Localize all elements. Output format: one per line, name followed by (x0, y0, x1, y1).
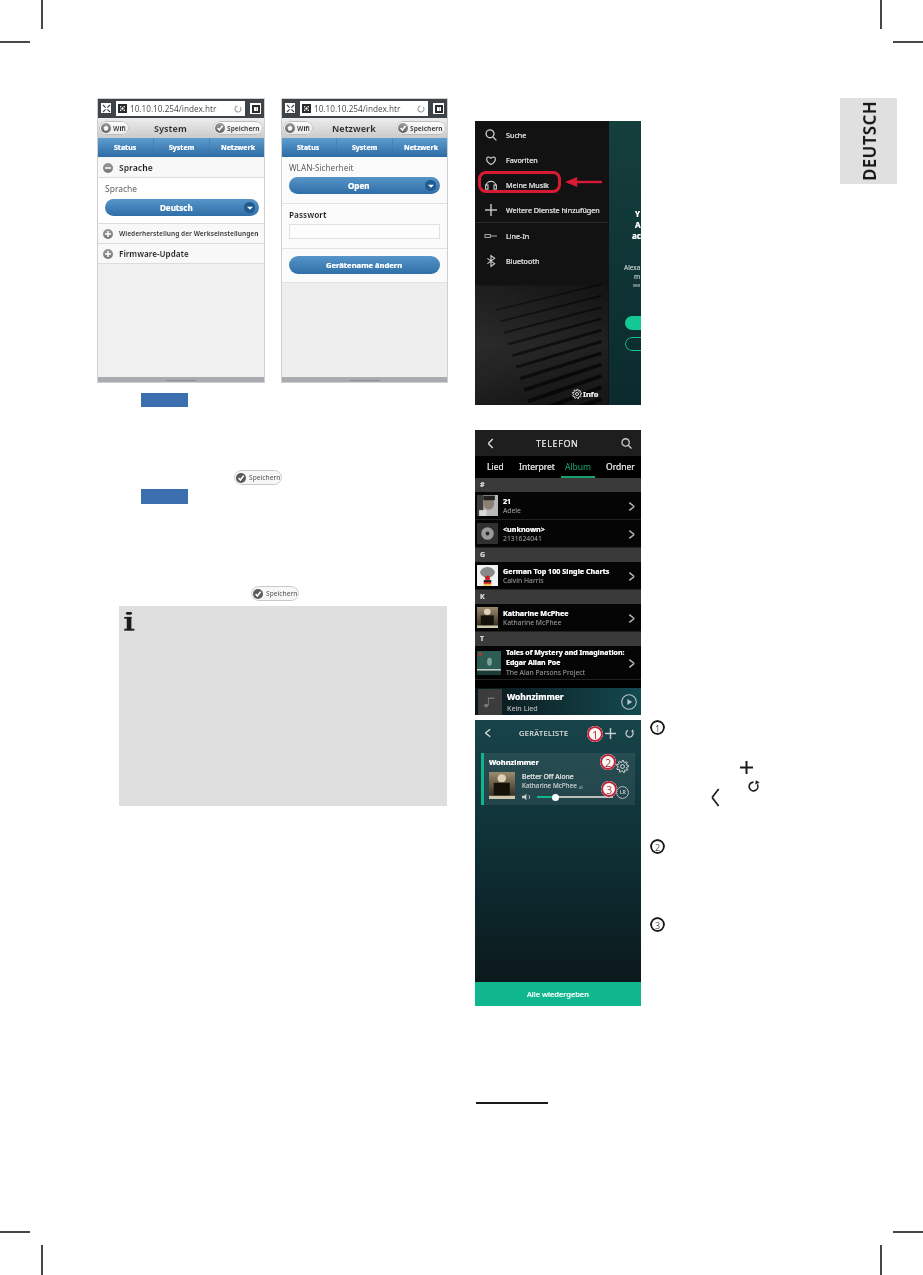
button[interactable]: Full screen (101, 103, 111, 113)
button[interactable]: Bluetooth (485, 248, 606, 273)
button[interactable]: Gerätename ändern (289, 256, 440, 274)
staticText: # (480, 480, 485, 490)
staticText: German Top 100 Single Charts (503, 566, 610, 576)
button[interactable]: Speichern (253, 586, 299, 601)
staticText: System (352, 143, 378, 153)
staticText: Alle wiedergeben (527, 989, 589, 999)
button[interactable]: Suche (485, 122, 606, 147)
staticText: Status (114, 143, 137, 153)
button[interactable]: System (154, 138, 209, 157)
button[interactable]: Speichern (215, 121, 261, 135)
staticText: Netzwerk (332, 122, 376, 134)
staticText: 3 (606, 782, 613, 797)
button[interactable]: Status (97, 138, 153, 157)
staticText: 1 (255, 106, 258, 112)
staticText: Deutsch (160, 202, 193, 213)
button[interactable]: 10.10.10.254/index.htr (118, 101, 243, 116)
staticText: Kein Lied (507, 703, 538, 713)
staticText: G (480, 550, 486, 560)
staticText: TELEFON (536, 437, 579, 449)
staticText: 2 (655, 841, 661, 853)
button[interactable]: Back (481, 726, 495, 740)
button[interactable]: Alle wiedergeben (475, 982, 641, 1006)
staticText: GERÄTELISTE (519, 728, 569, 738)
button[interactable]: Open (293, 177, 436, 194)
staticText: m (634, 272, 641, 281)
button[interactable]: Speichern (236, 470, 282, 485)
button[interactable]: Left Right channel (616, 786, 629, 799)
staticText: Sprache (119, 162, 153, 174)
staticText: Speichern (410, 124, 443, 133)
button[interactable]: Sprache (103, 159, 265, 177)
button[interactable]: Tales of Mystery and Imagination: (475, 646, 641, 679)
staticText: LR (620, 789, 626, 796)
button[interactable]: 10.10.10.254/index.htr (302, 101, 426, 116)
button[interactable]: Wifi (285, 121, 311, 135)
button[interactable]: Tabs (250, 103, 261, 114)
button[interactable]: Katharine McPhee (475, 604, 641, 631)
staticText: T (480, 634, 485, 644)
staticText: 2 (605, 755, 612, 770)
staticText: K (480, 592, 485, 602)
button[interactable]: System (337, 138, 392, 157)
staticText: A (635, 219, 641, 230)
staticText: Bluetooth (506, 256, 540, 266)
button[interactable]: Play (620, 693, 637, 710)
button[interactable]: Tabs (433, 103, 444, 114)
staticText: ac (632, 230, 641, 241)
button[interactable]: German Top 100 Single Charts (475, 562, 641, 589)
staticText: 1 (655, 722, 661, 734)
button[interactable]: Line-In (485, 223, 606, 248)
button[interactable]: Firmware-Update (103, 244, 265, 263)
button[interactable]: <unknown> (475, 520, 641, 547)
button[interactable]: Wifi (101, 121, 127, 135)
staticText: 1 (438, 106, 441, 112)
button[interactable]: Album (557, 456, 599, 478)
staticText: Firmware-Update (119, 248, 189, 259)
staticText: Katharine McPhee (503, 618, 562, 627)
staticText: 1 (592, 727, 599, 742)
button[interactable]: Full screen (285, 103, 295, 113)
staticText: Passwort (289, 209, 327, 220)
button[interactable]: Interpret (516, 456, 557, 478)
button[interactable]: Lied (475, 456, 516, 478)
button[interactable]: Meine Musik (485, 172, 606, 197)
button[interactable]: Ordner (599, 456, 641, 478)
staticText: Wiederherstellung der Werkseinstellungen (119, 229, 259, 238)
button[interactable]: Wiederherstellung der Werkseinstellungen (103, 224, 263, 243)
staticText: Wifi (113, 124, 126, 133)
button[interactable]: Info (572, 389, 599, 399)
staticText: Wohnzimmer (489, 757, 539, 767)
staticText: 21 (503, 496, 512, 506)
button[interactable]: Status (281, 138, 336, 157)
staticText: Status (297, 143, 320, 153)
staticText: Album (565, 461, 592, 473)
staticText: Info (583, 389, 599, 399)
staticText: Tales of Mystery and Imagination: (506, 648, 625, 658)
staticText: Better Off Alone (522, 772, 574, 781)
staticText: 10.10.10.254/index.htr (314, 103, 401, 114)
button[interactable]: Add device (604, 727, 617, 740)
button[interactable]: Search (619, 436, 633, 450)
button[interactable]: Speichern (398, 121, 444, 135)
staticText: 2131624041 (503, 534, 542, 543)
button[interactable]: Settings (616, 760, 629, 773)
staticText: Calvin Harris (503, 576, 544, 585)
button[interactable]: Netzwerk (393, 138, 448, 157)
staticText: Adele (503, 506, 521, 515)
staticText: Ordner (606, 461, 635, 473)
button[interactable]: Wohnzimmer (481, 753, 635, 805)
staticText: Alexa (624, 263, 641, 272)
button[interactable]: Back (483, 436, 497, 450)
button[interactable]: Netzwerk (210, 138, 265, 157)
staticText: Wohnzimmer (507, 691, 564, 703)
staticText: Lied (487, 461, 504, 473)
button[interactable]: Weitere Dienste hinzufügen (485, 197, 606, 222)
staticText: Interpret (519, 461, 555, 473)
button[interactable]: Deutsch (109, 199, 255, 216)
button[interactable]: Favoriten (485, 147, 606, 172)
button[interactable]: Refresh (623, 727, 636, 740)
staticText: DEUTSCH (857, 100, 880, 181)
button[interactable]: 21 (475, 492, 641, 519)
staticText: Weitere Dienste hinzufügen (506, 205, 600, 215)
